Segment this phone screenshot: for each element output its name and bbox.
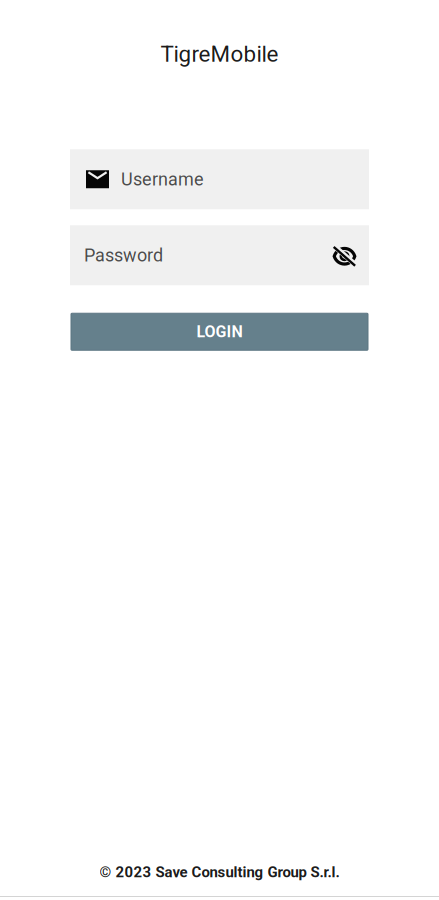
- button[interactable]: LOGIN: [71, 313, 368, 350]
- staticText: TigreMobile: [160, 41, 278, 67]
- staticText: © 2023 Save Consulting Group S.r.l.: [99, 863, 339, 881]
- staticText: Password: [84, 245, 163, 266]
- staticText: Username: [121, 169, 204, 190]
- button[interactable]: Password: [70, 225, 369, 285]
- staticText: LOGIN: [196, 322, 242, 341]
- button[interactable]: Username: [70, 149, 369, 209]
- button[interactable]: Show password: [332, 244, 357, 266]
